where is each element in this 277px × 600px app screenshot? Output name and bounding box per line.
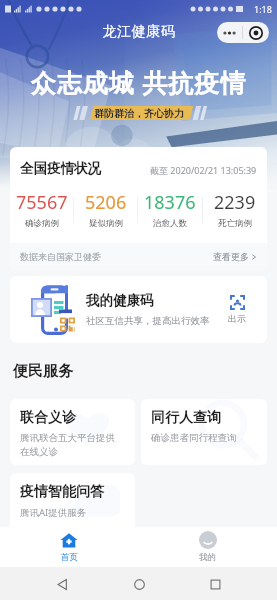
staticText: 死亡病例 [218, 218, 252, 229]
staticText: 出示 [228, 313, 246, 324]
staticText: 我的 [199, 552, 216, 563]
staticText: 2239 [214, 190, 256, 215]
staticText: 腾讯联合五大平台提供 在线义诊 [20, 432, 115, 458]
staticText: 确诊病例 [25, 218, 59, 229]
staticText: 社区互信共享，提高出行效率 [86, 315, 210, 327]
staticText: 18376 [144, 190, 196, 215]
button[interactable]: Recents [200, 569, 230, 599]
staticText: 众志成城 共抗疫情 [0, 65, 277, 99]
staticText: 便民服务 [13, 362, 73, 381]
staticText: 疑似病例 [89, 218, 123, 229]
staticText: 腾讯AI提供服务 [20, 506, 87, 519]
staticText: 联合义诊 [20, 409, 76, 427]
staticText: 疫情智能问答 [20, 483, 104, 501]
staticText: 1:18 [254, 3, 272, 15]
button[interactable]: 疫情智能问答 [10, 473, 135, 539]
button[interactable]: 我的健康码 [10, 276, 267, 343]
button[interactable]: 首页 [0, 527, 138, 567]
button[interactable]: Back [47, 569, 77, 599]
button[interactable]: 同行人查询 [141, 399, 267, 465]
staticText: 我的健康码 [86, 292, 154, 309]
button[interactable]: 联合义诊 [10, 399, 135, 465]
button[interactable]: Home [124, 569, 154, 599]
button[interactable]: 我的 [138, 527, 277, 567]
staticText: 治愈人数 [153, 218, 187, 229]
button[interactable]: 数据来自国家卫健委 [10, 243, 267, 270]
staticText: 群防群治，齐心协力 [94, 107, 184, 120]
staticText: 截至 2020/02/21 13:05:39 [150, 164, 257, 176]
staticText: 数据来自国家卫健委 [20, 251, 101, 262]
staticText: 同行人查询 [151, 409, 221, 427]
staticText: 确诊患者同行程查询 [151, 432, 237, 444]
staticText: 全国疫情状况 [20, 160, 101, 177]
staticText: 首页 [61, 552, 78, 563]
staticText: 75567 [16, 190, 68, 215]
staticText: 龙江健康码 [102, 23, 175, 41]
button[interactable]: Menu and close [217, 22, 269, 43]
staticText: 5206 [85, 190, 127, 215]
staticText: 查看更多 [213, 251, 249, 262]
